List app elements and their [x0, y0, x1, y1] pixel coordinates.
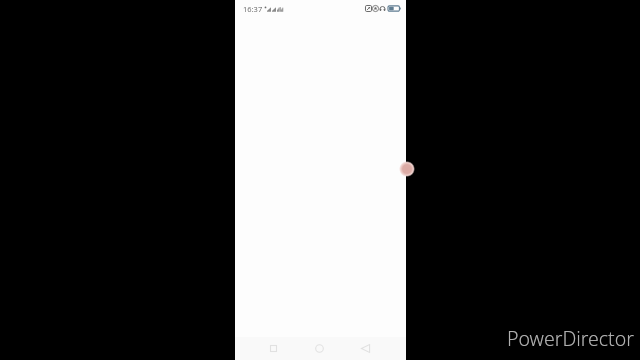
button[interactable]: Record: [399, 161, 415, 177]
button[interactable]: Home: [304, 337, 334, 360]
staticText: 16:37: [243, 4, 263, 14]
button[interactable]: Recent apps: [258, 337, 288, 360]
staticText: PowerDirector: [507, 325, 634, 352]
button[interactable]: Back: [350, 337, 380, 360]
